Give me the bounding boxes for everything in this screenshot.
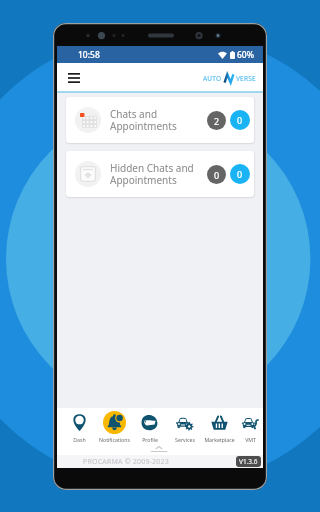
staticText: PROCARMA © 2009-2023 bbox=[83, 457, 169, 467]
button[interactable]: Dash bbox=[62, 408, 97, 446]
staticText: V1.3.6 bbox=[239, 457, 258, 466]
staticText: Chats and Appointments bbox=[110, 107, 207, 133]
staticText: 10:58 bbox=[78, 49, 100, 61]
button[interactable]: Notifications bbox=[97, 408, 132, 446]
button[interactable]: Services bbox=[167, 408, 202, 446]
staticText: Profile bbox=[142, 436, 158, 443]
staticText: Services bbox=[175, 436, 195, 443]
staticText: AUTO bbox=[203, 74, 222, 83]
staticText: 60% bbox=[237, 49, 254, 61]
staticText: 0 bbox=[237, 168, 243, 180]
button[interactable]: Profile bbox=[132, 408, 167, 446]
staticText: VERSE bbox=[236, 74, 256, 83]
staticText: Hidden Chats and Appointments bbox=[110, 161, 207, 187]
button[interactable]: Hidden Chats and Appointments bbox=[66, 151, 254, 197]
button[interactable]: VMT bbox=[237, 408, 263, 446]
button[interactable]: Chats and Appointments bbox=[66, 97, 254, 143]
staticText: VMT bbox=[245, 436, 256, 443]
staticText: 0 bbox=[214, 169, 220, 181]
staticText: 0 bbox=[237, 114, 243, 126]
staticText: 2 bbox=[214, 115, 220, 127]
staticText: Notifications bbox=[99, 436, 130, 443]
staticText: Marketplace bbox=[204, 436, 235, 443]
button[interactable]: Marketplace bbox=[202, 408, 237, 446]
staticText: Dash bbox=[73, 436, 86, 443]
button[interactable]: Open navigation menu bbox=[64, 68, 84, 88]
